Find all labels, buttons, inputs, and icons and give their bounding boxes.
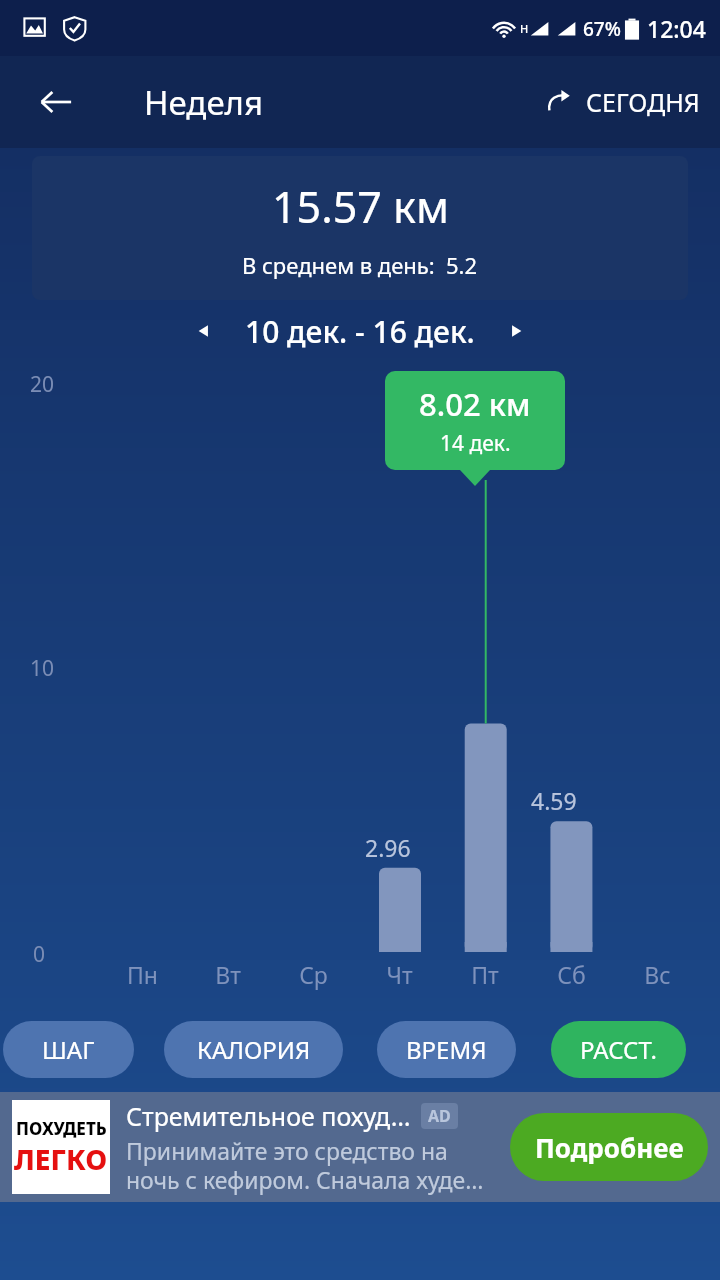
staticText: Пт	[471, 959, 499, 990]
button[interactable]: Предыдущая неделя	[181, 308, 227, 354]
staticText: Стремительное похуд…	[126, 1099, 411, 1133]
staticText: ПОХУДЕТЬ	[16, 1117, 107, 1140]
staticText: КАЛОРИЯ	[197, 1033, 311, 1066]
staticText: Неделя	[144, 80, 263, 125]
staticText: Чт	[386, 959, 413, 990]
button[interactable]: КАЛОРИЯ	[164, 1021, 343, 1078]
other: Поделиться	[544, 87, 574, 117]
staticText: ВРЕМЯ	[406, 1033, 487, 1066]
staticText: AD	[428, 1105, 451, 1127]
button[interactable]: 10 дек. - 16 дек.	[245, 311, 475, 352]
staticText: ШАГ	[42, 1033, 95, 1066]
button[interactable]: ВРЕМЯ	[377, 1021, 516, 1078]
button[interactable]: 15.57 км	[32, 156, 688, 300]
staticText: Подробнее	[535, 1130, 684, 1165]
staticText: Принимайте это средство на ночь с кефиро…	[126, 1135, 484, 1196]
staticText: Вс	[644, 959, 671, 990]
staticText: H	[520, 21, 529, 36]
staticText: Ср	[299, 959, 328, 990]
staticText: Сб	[557, 959, 586, 990]
button[interactable]: 8.02 км	[385, 371, 565, 470]
staticText: 20	[30, 370, 55, 399]
staticText: 15.57 км	[272, 177, 449, 236]
button[interactable]: Поделиться	[540, 77, 704, 127]
staticText: 12:04	[647, 13, 706, 44]
button[interactable]: РАССТ.	[551, 1021, 686, 1078]
staticText: В среднем в день: 5.2	[242, 250, 478, 280]
button[interactable]: Подробнее	[510, 1113, 708, 1181]
staticText: 4.59	[531, 785, 577, 816]
staticText: 8.02 км	[419, 383, 531, 425]
staticText: 2.96	[365, 832, 411, 863]
staticText: 10	[30, 654, 55, 683]
staticText: 67%	[583, 16, 621, 42]
button[interactable]: Назад	[26, 72, 86, 132]
staticText: 14 дек.	[440, 429, 511, 458]
button[interactable]: Следующая неделя	[493, 308, 539, 354]
staticText: 0	[33, 940, 46, 969]
staticText: Вт	[215, 959, 241, 990]
staticText: ЛЕГКО	[14, 1140, 108, 1178]
staticText: РАССТ.	[580, 1033, 657, 1066]
staticText: Пн	[127, 959, 158, 990]
staticText: СЕГОДНЯ	[586, 85, 700, 119]
button[interactable]: ШАГ	[3, 1021, 134, 1078]
